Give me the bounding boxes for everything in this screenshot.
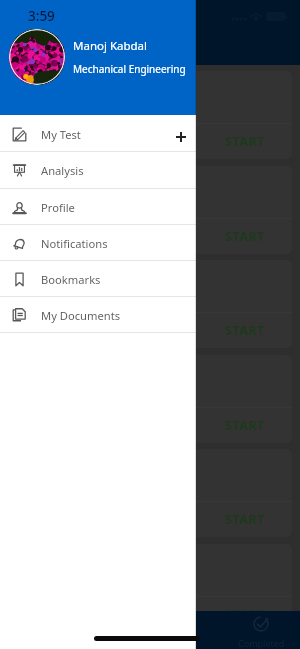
staticText: Notifications xyxy=(41,236,108,251)
button[interactable]: START xyxy=(225,511,265,528)
button[interactable]: START xyxy=(8,166,292,254)
button[interactable]: START xyxy=(8,544,292,632)
button[interactable]: Add test xyxy=(168,124,194,150)
button[interactable]: My Test xyxy=(0,116,196,152)
button[interactable]: START xyxy=(225,606,265,623)
button[interactable]: START xyxy=(225,417,265,434)
staticText: My Documents xyxy=(41,308,121,323)
button[interactable]: Completed xyxy=(233,615,289,649)
button[interactable]: Bookmarks xyxy=(0,261,196,297)
button[interactable]: START xyxy=(8,260,292,348)
staticText: Profile xyxy=(41,200,75,215)
staticText: START xyxy=(225,322,265,339)
button[interactable]: START xyxy=(8,355,292,443)
button[interactable]: START xyxy=(225,322,265,339)
staticText: Analysis xyxy=(41,163,84,178)
staticText: Bookmarks xyxy=(41,272,101,287)
button[interactable]: START xyxy=(225,133,265,150)
button[interactable]: START xyxy=(8,71,292,159)
staticText: 3:59 xyxy=(28,7,55,25)
staticText: My Test xyxy=(41,127,81,142)
button[interactable]: Analysis xyxy=(0,152,196,188)
button[interactable]: Profile xyxy=(0,189,196,225)
button[interactable]: START xyxy=(225,228,265,245)
staticText: Mechanical Engineering xyxy=(73,62,186,76)
button[interactable]: My Documents xyxy=(0,297,196,333)
staticText: START xyxy=(225,133,265,150)
staticText: Manoj Kabdal xyxy=(73,38,148,54)
staticText: START xyxy=(225,511,265,528)
staticText: START xyxy=(225,606,265,623)
button[interactable]: START xyxy=(8,449,292,537)
staticText: Completed xyxy=(238,637,285,649)
staticText: START xyxy=(225,417,265,434)
staticText: START xyxy=(225,228,265,245)
button[interactable]: Notifications xyxy=(0,225,196,261)
